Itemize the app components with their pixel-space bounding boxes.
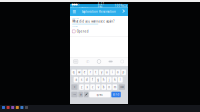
staticText: i: [112, 70, 113, 74]
staticText: o: [117, 70, 119, 74]
staticText: p: [123, 70, 125, 74]
button[interactable]: Tool: [93, 57, 105, 66]
staticText: x: [86, 85, 87, 89]
staticText: l: [120, 78, 121, 81]
staticText: ●●●○○: [71, 3, 79, 9]
button[interactable]: Tool: [70, 57, 82, 66]
button[interactable]: Tool: [116, 57, 128, 66]
button[interactable]: App: [20, 106, 23, 109]
staticText: v: [98, 85, 99, 89]
staticText: What did you wanna see again?: [72, 20, 114, 23]
staticText: ⇧: [73, 86, 75, 89]
staticText: w: [78, 70, 80, 74]
staticText: a: [75, 78, 76, 81]
staticText: n: [108, 85, 110, 89]
staticText: y: [101, 70, 102, 74]
button[interactable]: Tool: [82, 57, 93, 66]
staticText: m: [114, 85, 116, 89]
staticText: ANSWER: [72, 25, 78, 27]
button[interactable]: Opened: [72, 29, 89, 33]
button[interactable]: App: [7, 106, 10, 109]
button[interactable]: App: [11, 106, 14, 109]
button[interactable]: App: [2, 106, 5, 109]
staticText: f: [92, 78, 93, 81]
staticText: d: [86, 78, 88, 81]
staticText: Opened: [77, 30, 89, 33]
button[interactable]: App: [16, 106, 19, 109]
staticText: 100%: [114, 4, 123, 7]
staticText: z: [81, 85, 82, 89]
staticText: 123: [73, 94, 76, 95]
staticText: Carrier: [79, 2, 88, 9]
staticText: 🎤: [85, 93, 88, 96]
staticText: u: [106, 70, 108, 74]
staticText: q: [73, 70, 75, 74]
staticText: h: [103, 78, 105, 81]
staticText: e: [84, 70, 86, 74]
staticText: b: [103, 85, 105, 89]
staticText: ⌫: [120, 86, 124, 89]
staticText: ⊕: [80, 93, 82, 96]
staticText: 4:21 PM: [98, 2, 105, 9]
staticText: g: [97, 78, 99, 81]
staticText: ✆: [86, 59, 89, 64]
staticText: r: [90, 70, 91, 74]
staticText: space: [96, 93, 103, 96]
button[interactable]: Tool: [105, 57, 116, 66]
staticText: c: [92, 85, 93, 89]
staticText: j: [109, 78, 110, 81]
staticText: s: [81, 78, 82, 81]
button[interactable]: Menu: [71, 8, 77, 16]
staticText: Send: [113, 93, 120, 96]
button[interactable]: Next: [121, 8, 127, 16]
staticText: QUESTION: [72, 17, 79, 19]
staticText: t: [95, 70, 96, 74]
staticText: Exploration Reservation: [82, 10, 116, 13]
staticText: k: [114, 78, 115, 81]
